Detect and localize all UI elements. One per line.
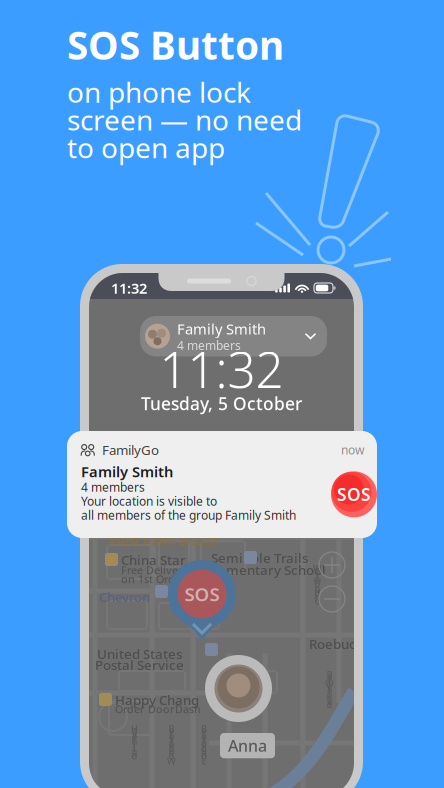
staticText: 11:32 — [111, 278, 147, 298]
staticText — [328, 688, 330, 701]
staticText: now — [341, 442, 364, 458]
staticText: l — [328, 686, 331, 698]
staticText: to open app — [67, 129, 225, 166]
staticText: r — [202, 740, 206, 752]
staticText: o — [201, 737, 207, 750]
staticText — [170, 745, 172, 757]
staticText: r — [132, 732, 136, 745]
staticText: Postal Service — [95, 656, 184, 674]
staticText: Roebuck — [309, 635, 363, 653]
staticText: d — [314, 587, 320, 600]
staticText: Tuesday, 5 October — [141, 392, 302, 415]
staticText: screen — no need — [67, 101, 302, 138]
staticText — [203, 745, 205, 757]
button[interactable]: FamilyGo — [67, 431, 377, 538]
staticText: B — [201, 722, 207, 735]
staticText: d — [201, 750, 207, 762]
staticText: o — [314, 572, 320, 585]
staticText: 4 members — [81, 479, 145, 495]
staticText: all members of the group Family Smith — [81, 507, 296, 523]
staticText: SOS Button — [67, 19, 284, 70]
staticText: d — [168, 750, 174, 762]
staticText: W — [313, 562, 322, 575]
staticText — [316, 577, 318, 590]
staticText: a — [132, 725, 137, 737]
staticText: Happy Chang — [115, 691, 199, 709]
staticText: l — [316, 567, 319, 580]
staticText: r — [202, 727, 206, 740]
staticText: d — [201, 742, 207, 755]
staticText: Family Smith — [81, 462, 173, 481]
staticText: Your location is visible to — [81, 493, 217, 509]
staticText: P — [314, 580, 320, 592]
staticText: H — [131, 722, 138, 735]
staticText: h — [131, 735, 137, 747]
staticText: a — [327, 683, 332, 696]
staticText: Free Delivery — [121, 563, 189, 577]
staticText: SOS — [184, 582, 219, 606]
staticText: o — [326, 678, 332, 691]
staticText: l — [133, 740, 136, 752]
staticText: f — [202, 735, 205, 747]
staticText: d — [131, 750, 137, 762]
staticText: on 1st Order — [121, 572, 186, 586]
staticText: s — [169, 732, 174, 745]
staticText: Seminole Trails — [211, 549, 308, 567]
staticText: d — [326, 698, 332, 711]
staticText: i — [133, 737, 136, 750]
staticText: l — [328, 693, 331, 706]
staticText: 11:32 — [159, 336, 283, 401]
staticText: e — [169, 730, 174, 742]
staticText: Anna — [228, 735, 267, 756]
staticText: B — [168, 722, 174, 735]
staticText: a — [327, 671, 332, 683]
staticText: Family Smith — [177, 319, 266, 338]
staticText: v — [327, 696, 332, 708]
staticText: E — [201, 755, 206, 767]
staticText: f — [170, 735, 173, 747]
staticText: B — [326, 691, 332, 703]
staticText: W — [167, 755, 176, 767]
staticText: d — [168, 742, 174, 755]
staticText: Elementary School — [207, 561, 326, 579]
staticText: e — [132, 730, 137, 742]
staticText: r — [169, 740, 173, 752]
staticText: B — [326, 668, 332, 681]
staticText: l — [316, 570, 319, 582]
staticText: Order DoorDash — [115, 702, 201, 716]
staticText: FamilyGo — [102, 441, 159, 459]
staticText: e — [201, 725, 206, 737]
staticText — [316, 590, 318, 602]
staticText: r — [327, 681, 331, 693]
staticText: o — [168, 737, 174, 750]
staticText: SOS — [337, 483, 371, 506]
staticText — [203, 752, 205, 765]
staticText: v — [132, 727, 137, 740]
staticText: R — [131, 747, 137, 760]
button[interactable]: Zoom out — [317, 584, 347, 614]
staticText: on phone lock — [67, 73, 251, 110]
button[interactable]: Zoom in — [317, 550, 347, 580]
staticText: i — [316, 565, 319, 577]
staticText — [133, 745, 135, 757]
staticText: China Star — [121, 551, 186, 569]
staticText: d — [314, 595, 320, 607]
staticText — [170, 752, 172, 765]
staticText: e — [169, 725, 174, 737]
staticText: Chevron — [99, 588, 150, 606]
staticText: s — [201, 732, 206, 745]
staticText: West Palm Beach — [109, 531, 219, 549]
staticText: 4 members — [177, 337, 241, 353]
staticText: m — [325, 676, 334, 688]
button[interactable]: Family Smith — [140, 316, 327, 356]
staticText: l — [133, 742, 136, 755]
staticText: R — [314, 592, 320, 605]
staticText: R — [168, 747, 174, 760]
staticText: l — [328, 673, 331, 686]
staticText: w — [313, 575, 321, 587]
staticText: r — [169, 727, 173, 740]
staticText: e — [201, 730, 206, 742]
staticText: R — [201, 747, 207, 760]
staticText: o — [314, 582, 320, 595]
staticText: n — [314, 585, 320, 597]
